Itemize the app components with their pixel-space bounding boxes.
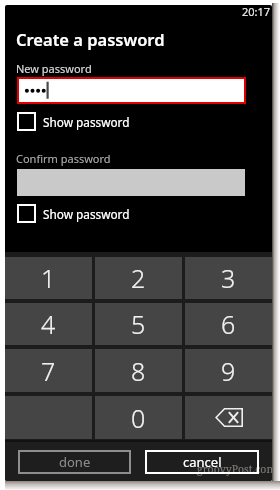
staticText: 8 [131,354,146,388]
button[interactable]: 3 [185,257,272,299]
button[interactable]: done [18,450,131,474]
staticText: 0 [131,401,146,435]
staticText: 5 [131,307,146,341]
staticText: 3 [221,261,236,295]
staticText: Confirm password [16,151,111,166]
button[interactable]: Show password [17,112,130,131]
button[interactable] [19,79,244,102]
button[interactable]: Backspace [185,396,272,439]
button[interactable]: 7 [5,349,92,392]
button[interactable]: Show password [17,204,130,223]
staticText: 7 [41,354,56,388]
staticText: Show password [43,206,130,222]
button[interactable]: cancel [145,450,259,474]
staticText: 4 [41,307,56,341]
button[interactable]: 0 [95,396,182,439]
staticText: Show password [43,114,130,130]
staticText: Create a password [16,28,165,50]
button[interactable]: 4 [5,303,92,345]
button[interactable]: 1 [5,257,92,299]
staticText: done [59,453,91,471]
staticText: 20:17 [242,5,271,19]
staticText: cancel [183,453,222,471]
button[interactable]: 2 [95,257,182,299]
staticText: 2 [131,261,146,295]
staticText: 6 [221,307,236,341]
button[interactable]: 5 [95,303,182,345]
staticText: 9 [221,354,236,388]
button[interactable]: 8 [95,349,182,392]
staticText: New password [16,61,92,76]
button[interactable]: 9 [185,349,272,392]
staticText: groovyPost.com [197,462,272,476]
staticText: 1 [41,261,56,295]
button[interactable]: 6 [185,303,272,345]
